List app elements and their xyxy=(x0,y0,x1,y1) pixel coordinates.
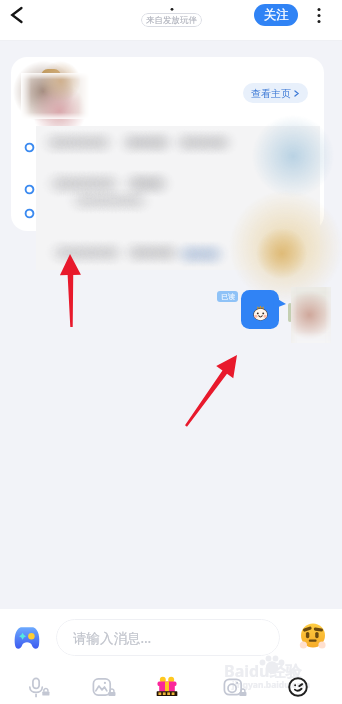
staticText: Baidu经验 xyxy=(224,660,302,682)
button[interactable] xyxy=(11,57,324,231)
button[interactable]: 查看主页 xyxy=(243,83,308,103)
button[interactable]: Photo xyxy=(86,670,120,704)
staticText: 请输入消息… xyxy=(73,629,152,647)
staticText: 来自发放玩伴 xyxy=(146,15,197,26)
button[interactable]: 关注 xyxy=(254,4,298,26)
staticText: jingyan.baidu.com xyxy=(232,679,311,691)
button[interactable]: Game center xyxy=(11,622,43,654)
button[interactable]: Stickers xyxy=(281,670,315,704)
button[interactable]: Camera xyxy=(217,670,251,704)
button[interactable]: Voice message xyxy=(20,670,54,704)
button[interactable]: 请输入消息… xyxy=(56,619,280,656)
button[interactable]: Emoji keyboard xyxy=(297,620,329,652)
staticText: 查看主页 xyxy=(251,87,291,100)
staticText: 已读 xyxy=(221,292,235,301)
staticText: 关注 xyxy=(264,7,289,23)
button[interactable]: Back xyxy=(0,0,34,30)
button[interactable]: More options xyxy=(304,0,334,30)
button[interactable]: Gift xyxy=(150,669,184,703)
